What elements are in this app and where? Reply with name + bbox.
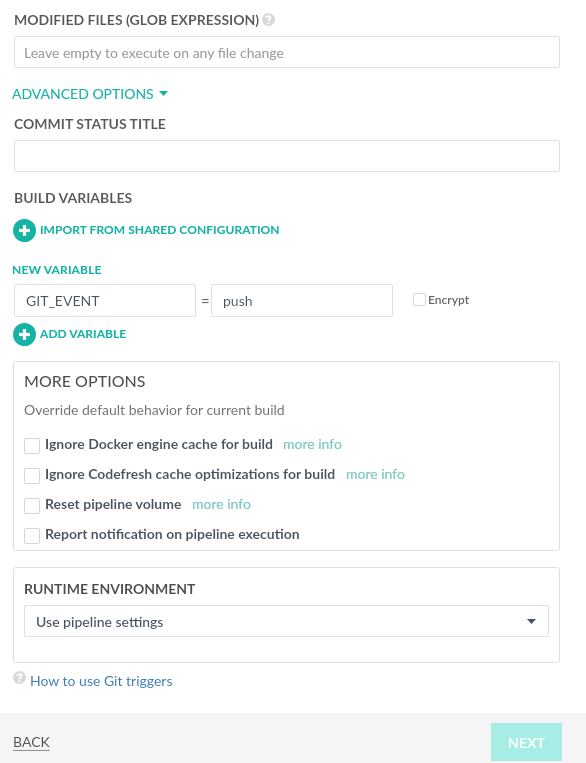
staticText: push xyxy=(223,292,253,309)
staticText: = xyxy=(201,292,210,310)
button[interactable]: Ignore Docker engine cache for build xyxy=(24,438,342,454)
staticText: NEW VARIABLE xyxy=(12,262,102,276)
button[interactable]: more info xyxy=(24,498,83,514)
button[interactable]: more info xyxy=(24,438,83,454)
staticText: MORE OPTIONS xyxy=(24,371,146,390)
button[interactable]: more info xyxy=(24,468,83,484)
staticText: Encrypt xyxy=(428,292,470,306)
staticText: How to use Git triggers xyxy=(30,672,173,689)
staticText: GIT_EVENT xyxy=(26,292,100,309)
button[interactable]: push xyxy=(211,284,393,317)
staticText: Reset pipeline volume xyxy=(45,495,182,511)
staticText: ADD VARIABLE xyxy=(40,326,127,340)
staticText: BACK xyxy=(13,733,50,750)
button[interactable]: Encrypt xyxy=(413,292,470,306)
button[interactable]: ADVANCED OPTIONS xyxy=(12,85,168,102)
button[interactable]: How to use Git triggers xyxy=(13,671,173,688)
button[interactable]: Use pipeline settings xyxy=(24,605,549,637)
staticText: Ignore Docker engine cache for build xyxy=(45,435,273,451)
staticText: MODIFIED FILES (GLOB EXPRESSION) xyxy=(14,11,260,28)
staticText: NEXT xyxy=(508,734,545,751)
button[interactable]: BACK xyxy=(13,733,50,750)
staticText: COMMIT STATUS TITLE xyxy=(14,115,166,132)
button[interactable] xyxy=(14,140,560,172)
staticText: ADVANCED OPTIONS xyxy=(12,85,154,102)
staticText: RUNTIME ENVIRONMENT xyxy=(24,580,196,597)
button[interactable]: GIT_EVENT xyxy=(14,284,196,317)
staticText: Leave empty to execute on any file chang… xyxy=(24,44,284,61)
staticText: BUILD VARIABLES xyxy=(14,189,133,206)
staticText: Report notification on pipeline executio… xyxy=(45,525,300,541)
button[interactable]: Ignore Codefresh cache optimizations for… xyxy=(24,468,405,484)
staticText: Use pipeline settings xyxy=(36,613,164,630)
button[interactable]: Reset pipeline volume xyxy=(24,498,251,514)
button[interactable]: NEXT xyxy=(491,723,562,761)
button[interactable]: IMPORT FROM SHARED CONFIGURATION xyxy=(13,219,283,242)
staticText: Override default behavior for current bu… xyxy=(24,401,285,418)
button[interactable]: Report notification on pipeline executio… xyxy=(24,528,299,544)
button[interactable]: Leave empty to execute on any file chang… xyxy=(14,36,560,68)
staticText: Ignore Codefresh cache optimizations for… xyxy=(45,465,336,481)
button[interactable]: ADD VARIABLE xyxy=(13,323,133,346)
staticText: IMPORT FROM SHARED CONFIGURATION xyxy=(40,222,280,236)
